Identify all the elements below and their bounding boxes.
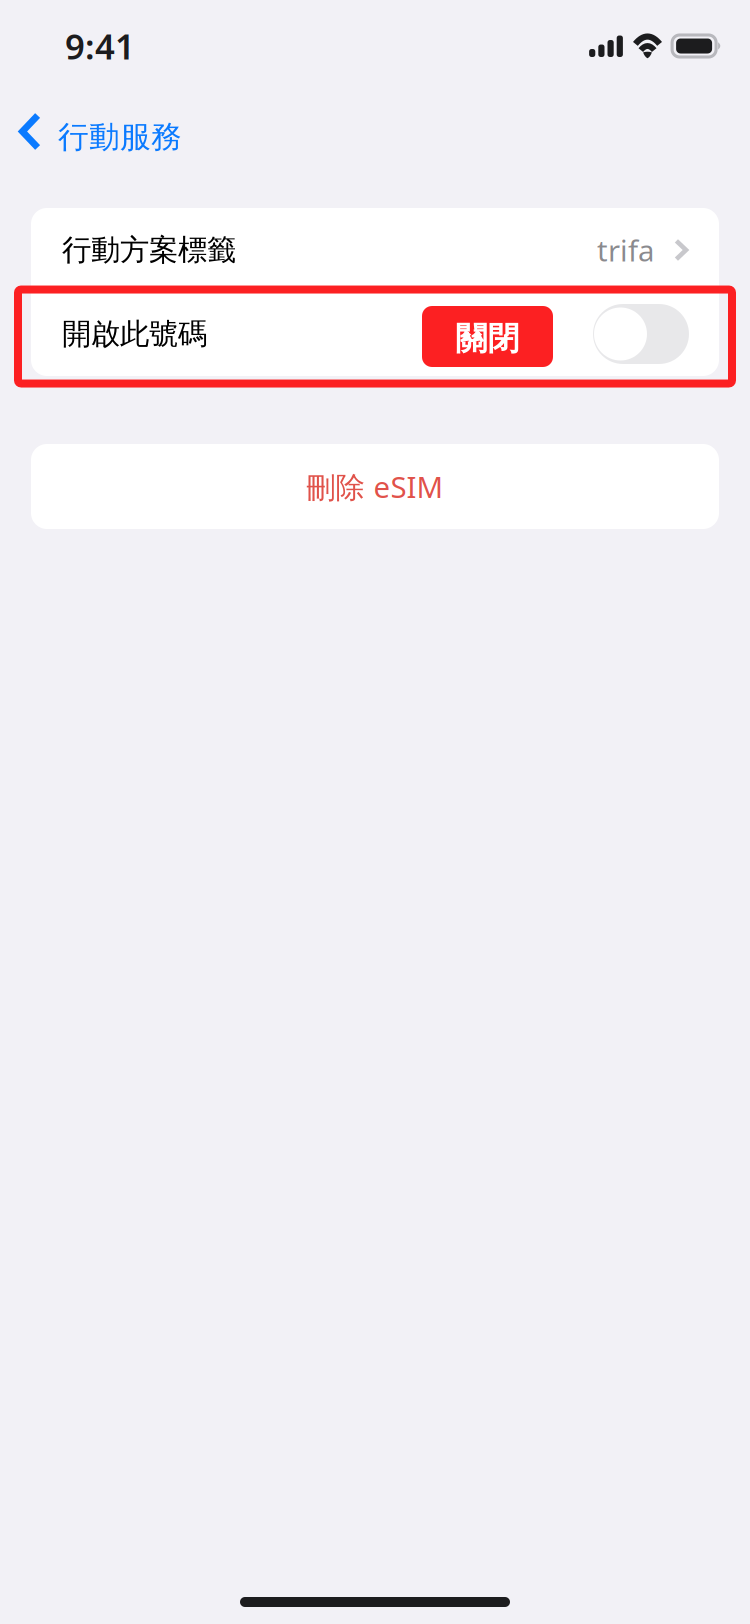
button[interactable]: 返回 行動服務 <box>0 88 204 175</box>
staticText: 開啟此號碼 <box>62 316 207 352</box>
staticText: 9:41 <box>65 23 135 69</box>
staticText: 關閉 <box>455 319 519 358</box>
staticText: 行動服務 <box>58 118 182 156</box>
button[interactable]: 關閉 <box>422 301 553 367</box>
button[interactable]: 開啟此號碼 <box>593 304 689 364</box>
staticText: 刪除 eSIM <box>306 467 443 506</box>
staticText: 行動方案標籤 <box>62 232 236 268</box>
button[interactable]: 刪除 eSIM <box>31 444 719 529</box>
button[interactable]: 行動方案標籤 <box>31 208 719 292</box>
staticText: trifa <box>597 230 654 269</box>
